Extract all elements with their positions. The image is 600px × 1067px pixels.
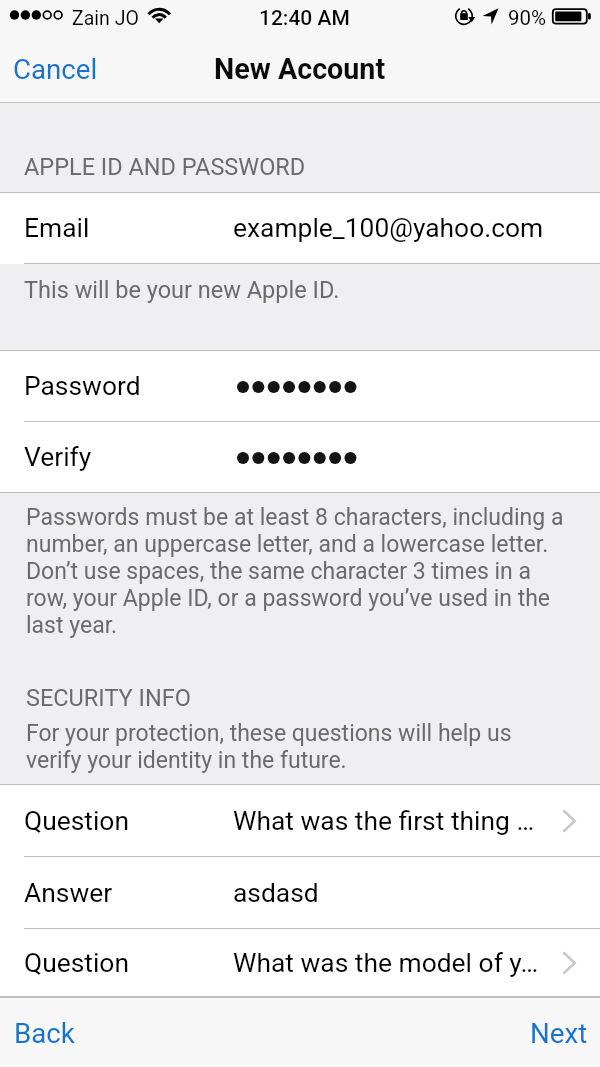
staticText: 90%: [508, 6, 547, 30]
button[interactable]: Question: [0, 929, 600, 997]
button[interactable]: Password: [0, 351, 600, 422]
staticText: Email: [24, 213, 90, 244]
staticText: Passwords must be at least 8 characters,…: [26, 504, 564, 639]
staticText: What was the first thing …: [233, 806, 535, 837]
button[interactable]: Question: [0, 785, 600, 857]
other: Choose question: [563, 810, 576, 832]
staticText: Question: [24, 948, 129, 979]
button[interactable]: Verify: [0, 422, 600, 493]
staticText: Verify: [24, 442, 92, 473]
staticText: Password: [24, 371, 141, 402]
button[interactable]: Next: [516, 998, 600, 1067]
staticText: 12:40 AM: [259, 6, 350, 31]
staticText: What was the model of y…: [233, 948, 539, 979]
staticText: asdasd: [233, 878, 319, 909]
staticText: Zain JO: [72, 7, 139, 30]
staticText: APPLE ID AND PASSWORD: [24, 153, 306, 181]
staticText: example_100@yahoo.com: [233, 213, 544, 244]
staticText: For your protection, these questions wil…: [26, 720, 512, 774]
staticText: This will be your new Apple ID.: [24, 276, 340, 304]
other: Choose question: [563, 952, 576, 974]
button[interactable]: Email: [0, 193, 600, 264]
button[interactable]: Answer: [0, 857, 600, 929]
staticText: New Account: [214, 52, 386, 86]
staticText: Cancel: [13, 53, 98, 85]
staticText: Question: [24, 806, 129, 837]
staticText: SECURITY INFO: [26, 684, 191, 712]
button[interactable]: Cancel: [0, 40, 112, 102]
staticText: Next: [530, 1017, 588, 1049]
button[interactable]: Back: [0, 998, 89, 1067]
staticText: Back: [14, 1017, 75, 1049]
staticText: Answer: [24, 878, 113, 909]
